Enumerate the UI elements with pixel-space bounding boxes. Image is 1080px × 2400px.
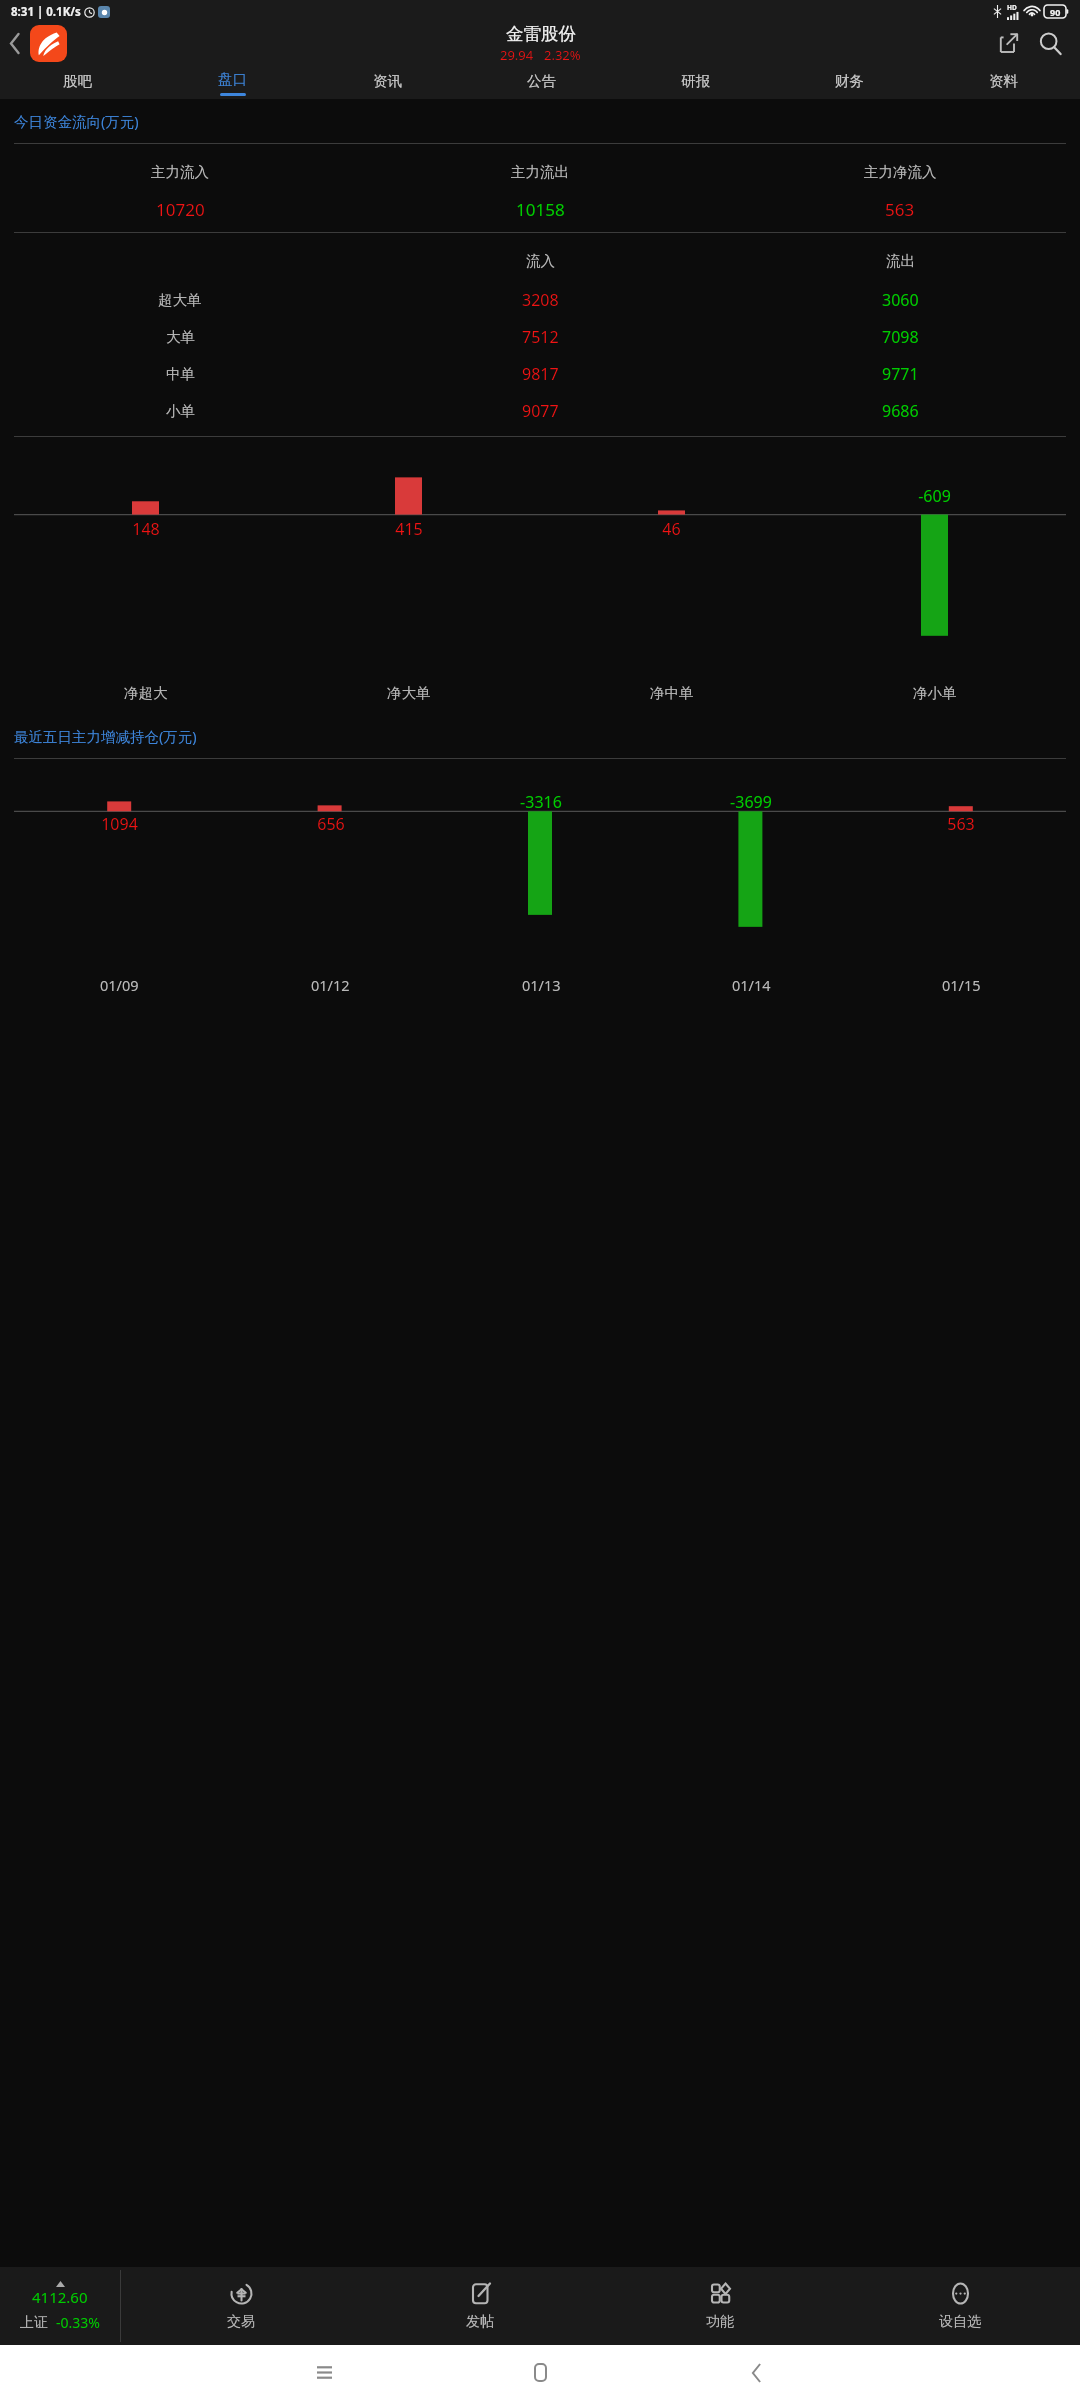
staticText: 资讯 [373, 72, 402, 90]
staticText: 上证 [20, 2314, 48, 2332]
button[interactable]: 研报 [618, 63, 772, 99]
button[interactable]: Search [1028, 23, 1072, 63]
staticText: 148 [132, 518, 160, 540]
button[interactable]: 中单 [0, 355, 1080, 392]
staticText: 大单 [166, 328, 195, 346]
staticText: 10720 [156, 198, 205, 221]
staticText: 公告 [527, 72, 556, 90]
staticText: 净大单 [387, 684, 431, 702]
staticText: 超大单 [158, 291, 202, 309]
staticText: 01/15 [942, 975, 981, 995]
staticText: 415 [395, 518, 423, 540]
staticText: 主力流入 [151, 163, 209, 181]
staticText: -3316 [520, 791, 562, 813]
button[interactable]: 发帖 [360, 2267, 600, 2345]
button[interactable]: 公告 [464, 63, 618, 99]
staticText: HD [1007, 3, 1017, 12]
staticText: 2.32% [544, 46, 581, 63]
staticText: 盘口 [218, 70, 247, 88]
button[interactable]: 超大单 [0, 281, 1080, 318]
button[interactable]: 股吧 [0, 63, 155, 99]
staticText: 3060 [882, 289, 919, 311]
staticText: 9817 [522, 363, 559, 385]
staticText: 656 [317, 813, 345, 835]
staticText: 财务 [835, 72, 864, 90]
staticText: 46 [662, 518, 681, 540]
staticText: -609 [918, 485, 951, 507]
button[interactable]: App logo [30, 25, 67, 62]
button[interactable]: 设自选 [840, 2267, 1080, 2345]
staticText: 8:31 | 0.1K/s [11, 4, 81, 20]
staticText: 流入 [526, 252, 555, 270]
staticText: 01/09 [100, 975, 139, 995]
staticText: 9771 [882, 363, 919, 385]
button[interactable]: 功能 [600, 2267, 840, 2345]
staticText: 净超大 [124, 684, 168, 702]
staticText: 01/13 [522, 975, 561, 995]
button[interactable]: 4112.60 [0, 2267, 120, 2345]
staticText: 净小单 [913, 684, 957, 702]
button[interactable]: Back [0, 23, 30, 63]
staticText: 股吧 [63, 72, 92, 90]
button[interactable]: Share [988, 23, 1028, 63]
button[interactable]: Back [648, 2345, 864, 2400]
staticText: 563 [947, 813, 975, 835]
staticText: 9686 [882, 400, 919, 422]
staticText: 净中单 [650, 684, 694, 702]
staticText: 小单 [166, 402, 195, 420]
staticText: 9077 [522, 400, 559, 422]
button[interactable]: 盘口 [155, 63, 310, 99]
staticText: 1094 [101, 813, 138, 835]
staticText: 中单 [166, 365, 195, 383]
staticText: 01/14 [732, 975, 771, 995]
button[interactable]: 财务 [772, 63, 926, 99]
button[interactable]: 资讯 [310, 63, 464, 99]
button[interactable]: Home [432, 2345, 648, 2400]
staticText: 功能 [706, 2313, 734, 2331]
button[interactable]: 资料 [926, 63, 1080, 99]
staticText: 563 [885, 198, 915, 221]
button[interactable]: Recent apps [216, 2345, 432, 2400]
staticText: 设自选 [939, 2313, 981, 2331]
button[interactable]: 交易 [121, 2267, 360, 2345]
staticText: 7512 [522, 326, 559, 348]
button[interactable]: 大单 [0, 318, 1080, 355]
staticText: 资料 [989, 72, 1018, 90]
staticText: 01/12 [311, 975, 350, 995]
staticText: 4112.60 [32, 2287, 88, 2307]
staticText: 研报 [681, 72, 710, 90]
staticText: 交易 [227, 2313, 255, 2331]
staticText: 最近五日主力增减持仓(万元) [14, 726, 197, 746]
staticText: 发帖 [466, 2313, 494, 2331]
staticText: 金雷股份 [506, 23, 576, 45]
button[interactable]: 小单 [0, 392, 1080, 429]
staticText: -3699 [730, 791, 772, 813]
staticText: 流出 [886, 252, 915, 270]
staticText: 10158 [516, 198, 565, 221]
staticText: 90 [1050, 6, 1061, 18]
staticText: 主力净流入 [864, 163, 937, 181]
staticText: 今日资金流向(万元) [14, 111, 139, 131]
staticText: 主力流出 [511, 163, 569, 181]
staticText: 7098 [882, 326, 919, 348]
staticText: -0.33% [56, 2313, 100, 2332]
staticText: 3208 [522, 289, 559, 311]
staticText: 29.94 [500, 46, 534, 63]
